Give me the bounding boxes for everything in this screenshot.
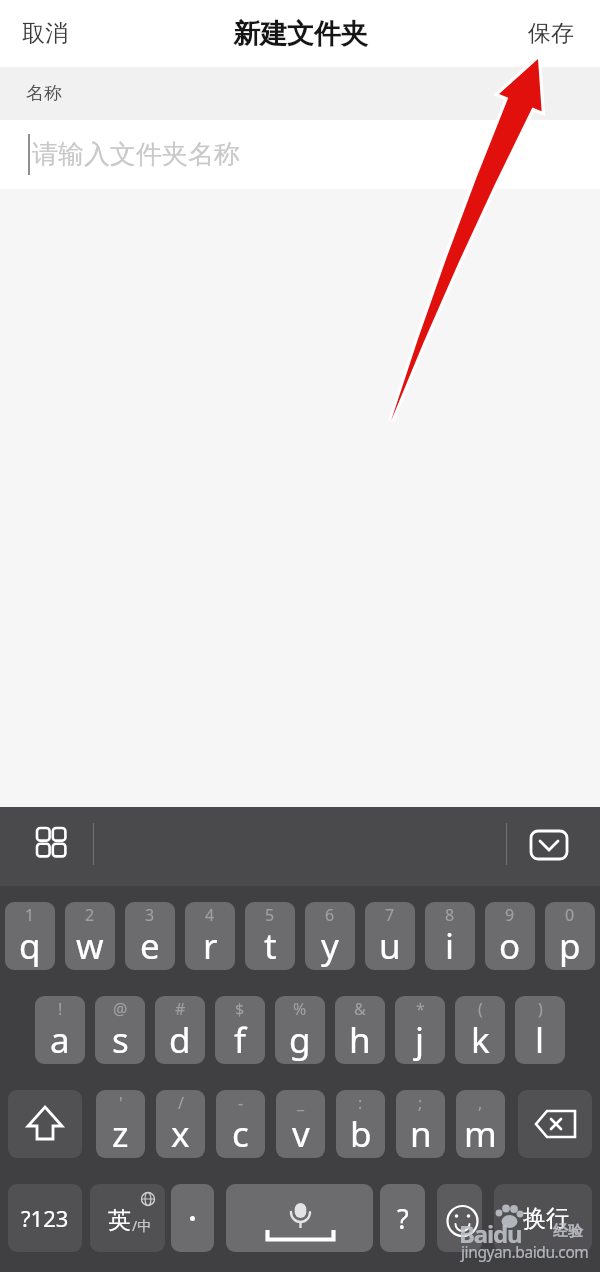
staticText: ; [418,1092,423,1114]
staticText: 0 [565,904,575,926]
staticText: u [379,922,401,970]
staticText: 英 [108,1206,131,1235]
staticText: 7 [385,904,395,926]
button[interactable]: 5 [245,902,295,970]
button[interactable] [171,1184,214,1252]
staticText: 9 [505,904,515,926]
staticText: ) [538,998,543,1020]
staticText: ' [119,1092,123,1114]
staticText: x [171,1110,190,1158]
button[interactable] [437,1184,482,1252]
staticText: b [350,1110,372,1158]
staticText: % [293,998,307,1020]
staticText: t [264,922,277,970]
button[interactable]: 1 [5,902,55,970]
button[interactable]: ) [515,996,565,1064]
staticText: 2 [85,904,95,926]
button[interactable]: 6 [305,902,355,970]
button[interactable]: 3 [125,902,175,970]
button[interactable]: $ [215,996,265,1064]
button[interactable]: 取消 [10,0,80,67]
button[interactable]: 请输入文件夹名称 [0,120,600,189]
staticText: c [232,1110,249,1158]
button[interactable]: ' [96,1090,145,1158]
staticText: /中 [132,1216,152,1235]
staticText: a [50,1016,70,1064]
staticText: - [238,1092,244,1114]
staticText: o [499,922,521,970]
staticText: i [445,922,455,970]
button[interactable]: ? [380,1184,425,1252]
staticText: # [175,998,186,1020]
button[interactable]: 9 [485,902,535,970]
staticText: q [19,922,41,970]
staticText: 6 [325,904,335,926]
staticText: jingyan.baidu.com [461,1241,589,1262]
staticText: 1 [25,904,35,926]
staticText: / [178,1092,184,1114]
button[interactable]: : [336,1090,385,1158]
staticText: l [535,1016,545,1064]
button[interactable]: , [456,1090,505,1158]
button[interactable]: ! [35,996,85,1064]
button[interactable] [518,1090,592,1158]
staticText: 保存 [528,19,574,48]
button[interactable] [8,1090,82,1158]
staticText: ! [58,998,63,1020]
button[interactable]: 保存 [518,0,584,67]
staticText: y [321,922,339,970]
staticText: 5 [265,904,275,926]
staticText: n [410,1110,432,1158]
staticText: 8 [445,904,455,926]
staticText: v [292,1110,310,1158]
button[interactable]: # [155,996,205,1064]
staticText: s [112,1016,129,1064]
staticText: ( [478,998,483,1020]
button[interactable]: * [395,996,445,1064]
staticText: 4 [205,904,215,926]
button[interactable]: 4 [185,902,235,970]
staticText: & [354,998,366,1020]
staticText: w [76,922,104,970]
button[interactable]: _ [276,1090,325,1158]
staticText: @ [113,998,128,1020]
button[interactable]: @ [95,996,145,1064]
staticText: 新建文件夹 [233,17,368,51]
staticText: $ [235,998,245,1020]
staticText: 3 [145,904,155,926]
staticText: 经验 [553,1222,583,1241]
button[interactable]: 换行 [494,1184,592,1252]
button[interactable]: & [335,996,385,1064]
button[interactable]: 0 [545,902,595,970]
staticText: ?123 [21,1203,69,1233]
staticText: Baidu [459,1217,522,1250]
staticText: r [203,922,218,970]
button[interactable]: 8 [425,902,475,970]
staticText: : [358,1092,363,1114]
button[interactable]: 2 [65,902,115,970]
button[interactable]: % [275,996,325,1064]
button[interactable] [522,821,576,871]
button[interactable] [30,821,74,871]
staticText: e [140,922,160,970]
staticText: j [415,1016,425,1064]
button[interactable]: ?123 [8,1184,82,1252]
staticText: 名称 [26,82,62,105]
button[interactable]: ; [396,1090,445,1158]
button[interactable]: 英 [90,1184,165,1252]
staticText: p [559,922,581,970]
button[interactable] [226,1184,373,1252]
button[interactable]: - [216,1090,265,1158]
staticText: 取消 [22,19,68,48]
button[interactable]: / [156,1090,205,1158]
staticText: m [464,1110,497,1158]
staticText: ? [397,1200,409,1237]
staticText: h [349,1016,371,1064]
staticText: _ [297,1092,305,1114]
staticText: 换行 [523,1204,569,1233]
staticText: f [234,1016,247,1064]
button[interactable]: 7 [365,902,415,970]
staticText: , [478,1092,483,1114]
staticText: 请输入文件夹名称 [32,138,240,171]
button[interactable]: ( [455,996,505,1064]
